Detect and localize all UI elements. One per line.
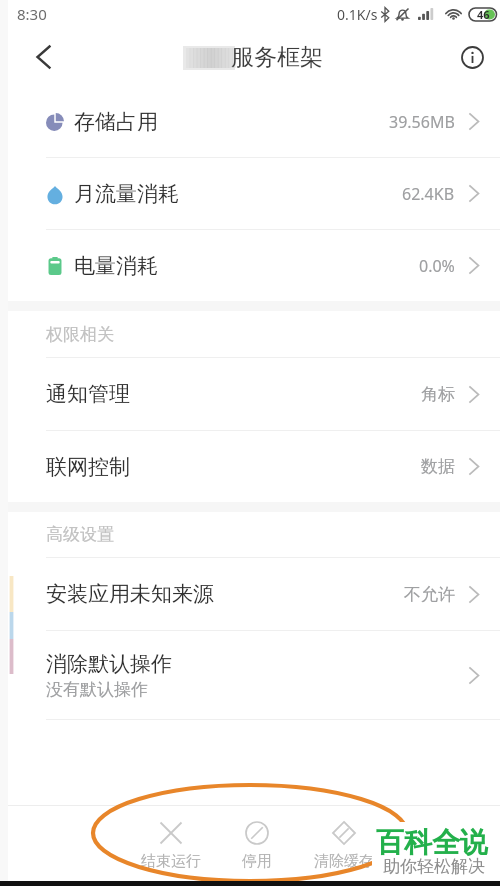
staticText: 结束运行 (141, 852, 201, 871)
staticText: 没有默认操作 (46, 679, 148, 700)
staticText: 通知管理 (46, 381, 130, 407)
staticText: 不允许 (404, 584, 455, 605)
staticText: 高级设置 (46, 524, 114, 545)
staticText: 39.56MB (389, 111, 455, 133)
button[interactable]: 停用 (213, 821, 301, 871)
staticText: 电量消耗 (74, 253, 158, 279)
button[interactable]: 安装应用未知来源 (0, 558, 500, 630)
button[interactable]: 消除默认操作 (0, 631, 500, 719)
button[interactable]: Back (18, 32, 68, 82)
staticText: 百科全说 (376, 825, 488, 860)
staticText: 停用 (242, 852, 272, 871)
staticText: 8:30 (17, 4, 47, 24)
staticText: 角标 (421, 384, 455, 405)
button[interactable]: 通知管理 (0, 358, 500, 430)
staticText: 权限相关 (46, 324, 114, 345)
button[interactable]: 月流量消耗 (0, 158, 500, 229)
button[interactable]: 联网控制 (0, 431, 500, 502)
staticText: 月流量消耗 (74, 181, 179, 207)
staticText: 消除默认操作 (46, 651, 172, 677)
staticText: 安装应用未知来源 (46, 581, 214, 607)
button[interactable]: Info (448, 33, 496, 81)
button[interactable]: 电量消耗 (0, 230, 500, 301)
staticText: 联网控制 (46, 454, 130, 480)
button[interactable]: 结束运行 (127, 821, 215, 871)
button[interactable]: 存储占用 (0, 86, 500, 157)
staticText: 0.1K/s (337, 5, 378, 24)
staticText: 46 (477, 7, 490, 22)
staticText: 62.4KB (402, 183, 455, 205)
staticText: 存储占用 (74, 109, 158, 135)
staticText: 服务框架 (231, 43, 323, 72)
staticText: 0.0% (419, 255, 455, 277)
staticText: 助你轻松解决 (383, 856, 485, 877)
button[interactable]: 清除缓存 (300, 821, 388, 871)
staticText: 清除缓存 (314, 852, 374, 871)
staticText: 数据 (421, 456, 455, 477)
